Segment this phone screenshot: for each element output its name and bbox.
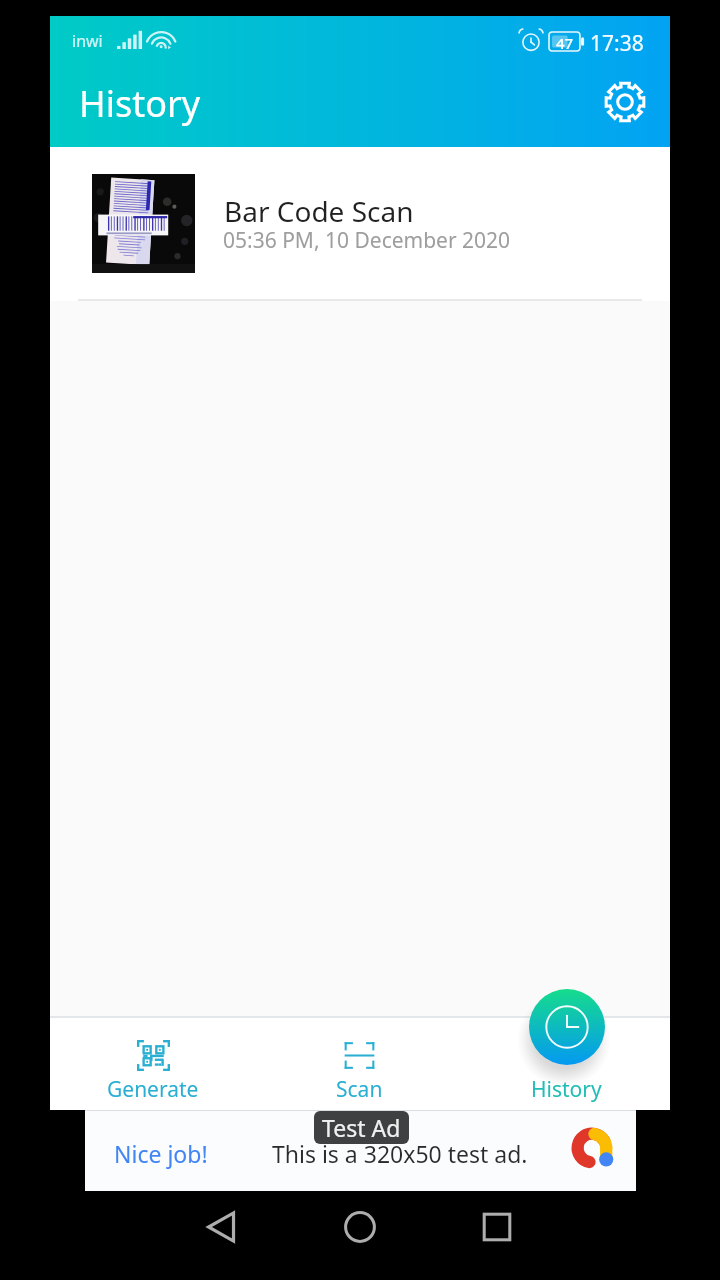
button[interactable]: Home	[332, 1199, 388, 1255]
staticText: inwi	[72, 30, 103, 52]
button[interactable]: Scan	[256, 1025, 463, 1104]
button[interactable]: Settings	[601, 78, 649, 126]
staticText: 47	[556, 33, 574, 52]
button[interactable]: Generate	[50, 1025, 256, 1104]
button[interactable]: Recents	[469, 1199, 525, 1255]
staticText: Generate	[107, 1075, 199, 1104]
button[interactable]: History	[463, 1024, 670, 1104]
button[interactable]: History	[529, 989, 605, 1065]
staticText: This is a 320x50 test ad.	[272, 1138, 528, 1169]
staticText: Bar Code Scan	[224, 192, 414, 230]
staticText: Scan	[336, 1075, 383, 1104]
staticText: History	[531, 1075, 602, 1104]
staticText: 05:36 PM, 10 December 2020	[223, 226, 511, 255]
staticText: Test Ad	[322, 1112, 401, 1143]
staticText: History	[79, 79, 201, 128]
staticText: 17:38	[590, 29, 644, 58]
staticText: Nice job!	[114, 1138, 208, 1169]
button[interactable]: Back	[194, 1199, 250, 1255]
button[interactable]: Bar Code Scan	[50, 147, 670, 299]
